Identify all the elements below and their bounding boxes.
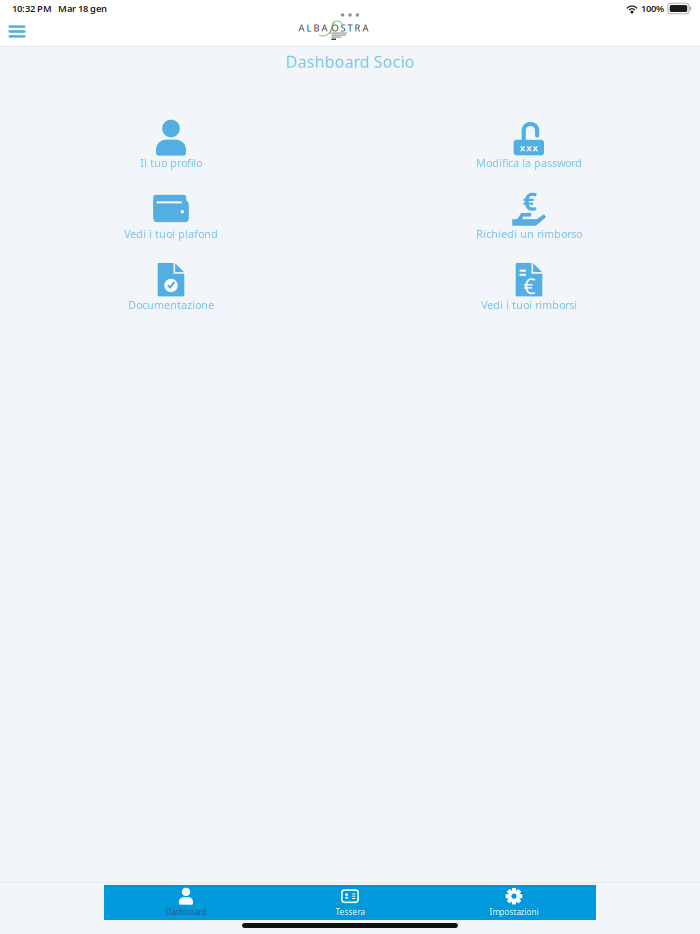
staticText: € — [522, 184, 536, 218]
staticText: A L B A — [298, 22, 327, 34]
staticText: x — [533, 141, 538, 154]
button[interactable]: x — [350, 109, 700, 180]
button[interactable]: Documentazione — [0, 251, 350, 322]
staticText: Richiedi un rimborso — [476, 227, 582, 241]
button[interactable]: Dashboard — [104, 885, 268, 920]
staticText: Modifica la password — [476, 156, 582, 170]
staticText: Vedi i tuoi rimborsi — [481, 298, 577, 312]
button[interactable]: Impostazioni — [432, 885, 596, 920]
staticText: Dashboard — [165, 907, 206, 917]
staticText: O S T R A — [331, 22, 368, 34]
staticText: x — [520, 141, 525, 154]
staticText: 100% — [639, 2, 664, 15]
staticText: Mar 18 gen — [52, 2, 107, 15]
staticText: Tessera — [335, 907, 364, 917]
button[interactable]: € — [350, 180, 700, 251]
button[interactable]: € — [350, 251, 700, 322]
staticText: € — [523, 272, 535, 300]
staticText: 10:32 PM — [12, 2, 52, 15]
staticText: Impostazioni — [489, 907, 538, 917]
button[interactable]: Vedi i tuoi plafond — [0, 180, 350, 251]
button[interactable]: Il tuo profilo — [0, 109, 350, 180]
button[interactable]: Tessera — [268, 885, 432, 920]
staticText: Dashboard Socio — [285, 51, 414, 72]
staticText: Documentazione — [128, 298, 214, 312]
staticText: Il tuo profilo — [140, 156, 202, 170]
staticText: Vedi i tuoi plafond — [124, 227, 218, 241]
staticText: x — [526, 141, 531, 154]
button[interactable]: Menu — [0, 17, 34, 45]
